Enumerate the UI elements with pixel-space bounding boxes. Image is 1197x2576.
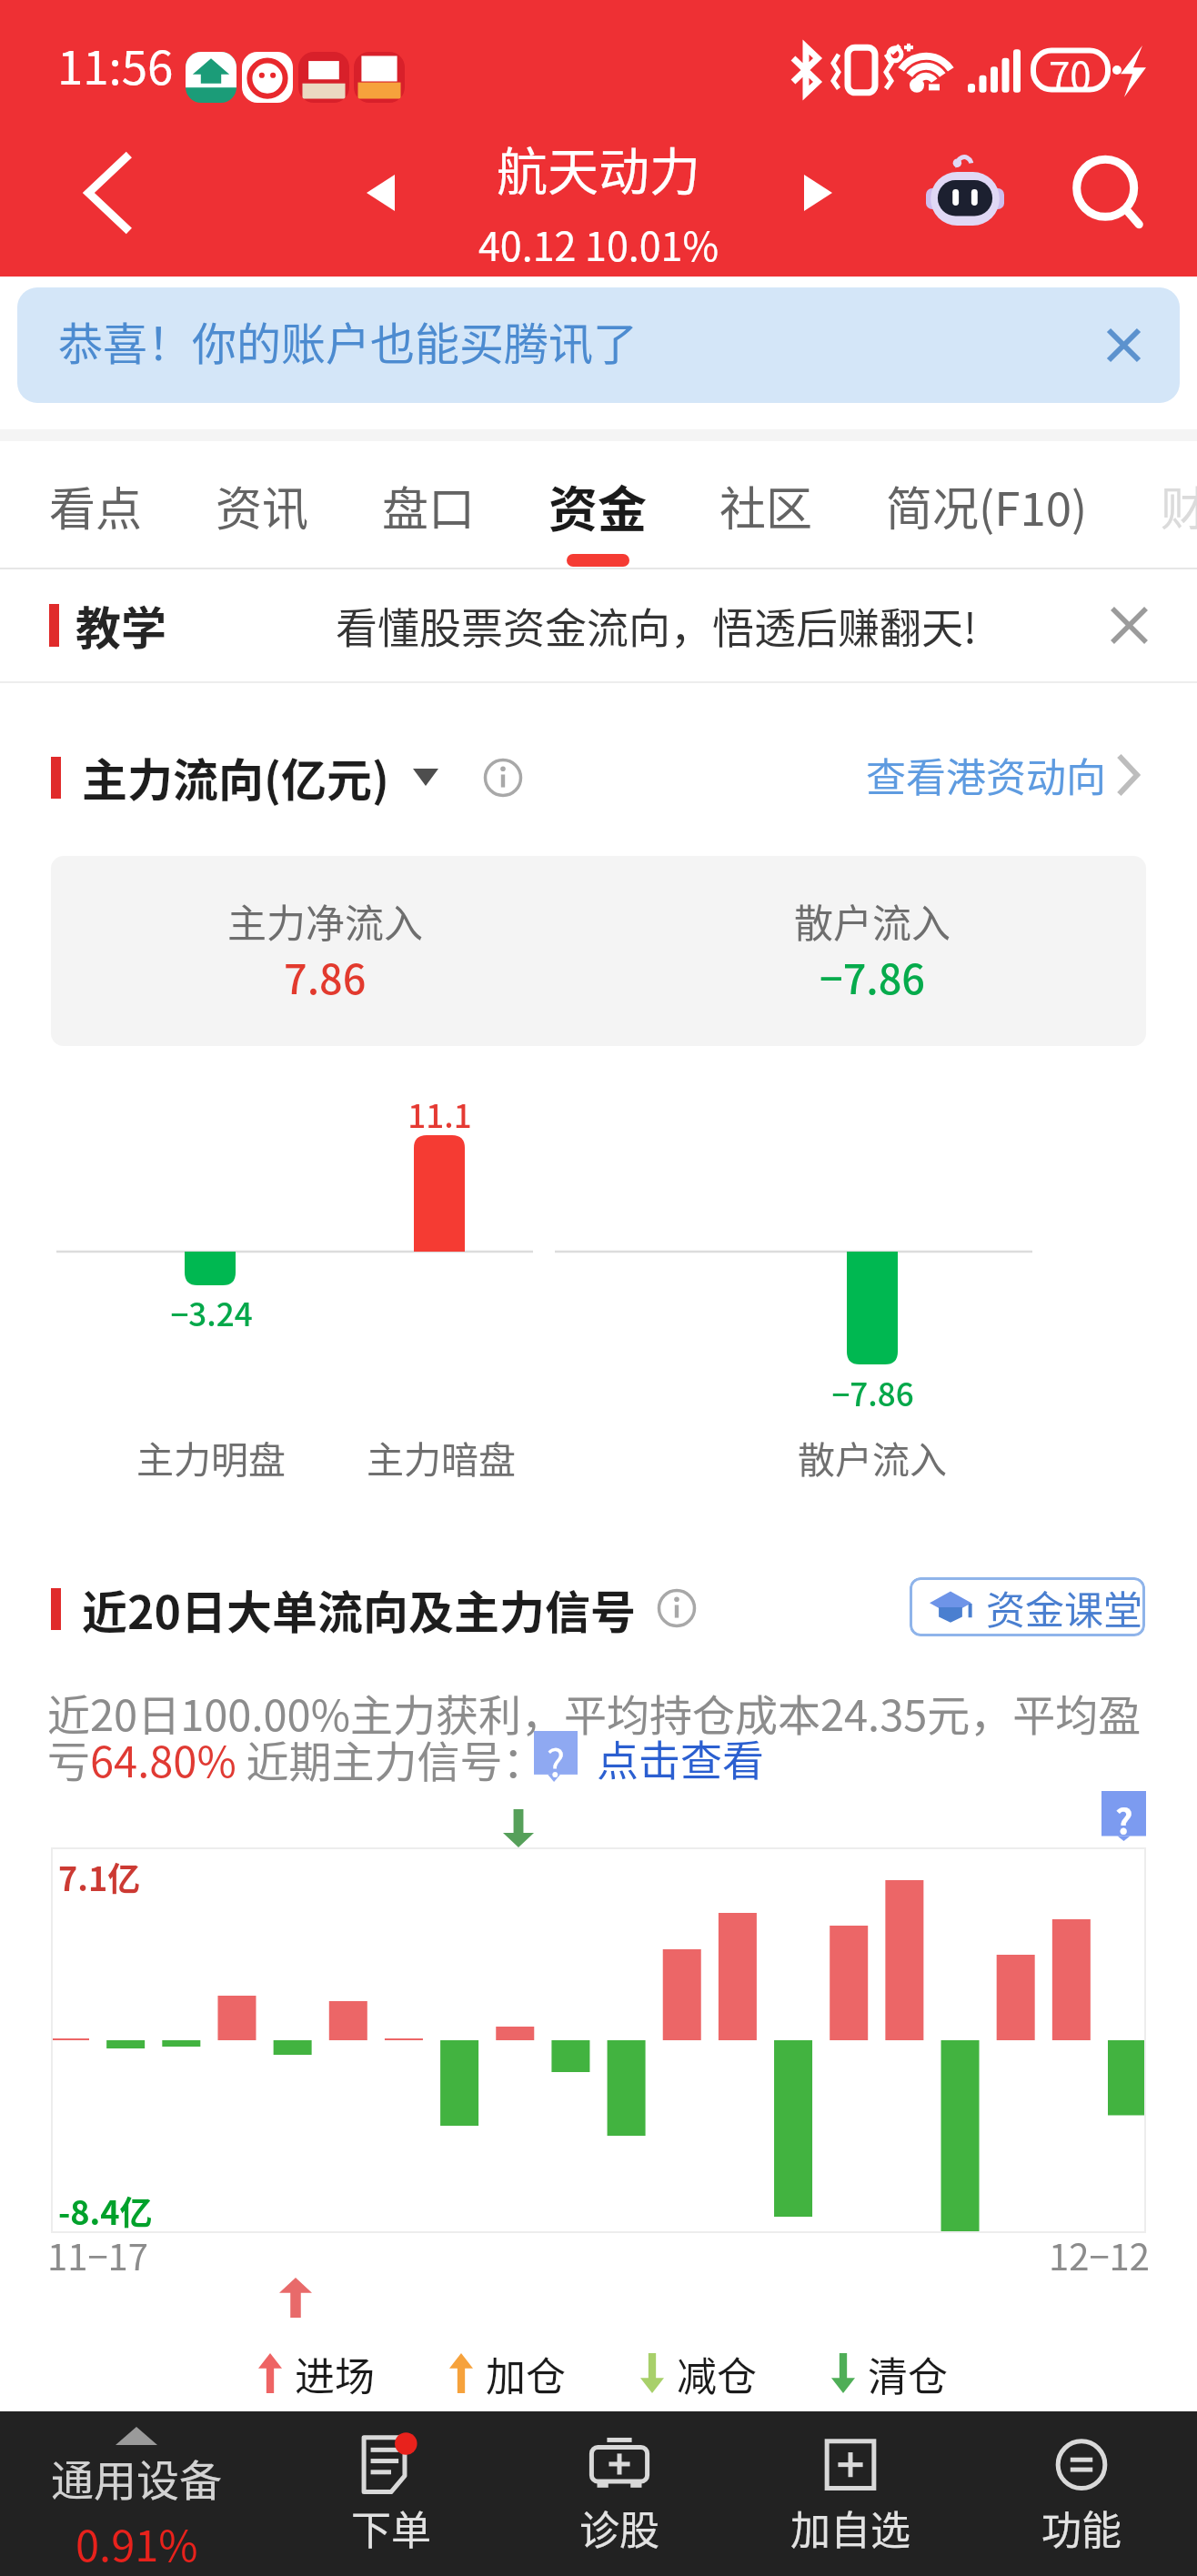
staticText: 资讯 [216,472,309,539]
button[interactable]: Info [653,1585,700,1632]
button[interactable]: 查看港资动向 [866,746,1139,804]
button[interactable]: AI assistant [901,109,1029,277]
staticText: 查看港资动向 [866,746,1106,804]
staticText: 11.1 [407,1091,472,1137]
staticText: 减仓 [677,2345,757,2401]
staticText: 航天动力 [497,131,700,205]
button[interactable]: 教学 [0,569,1197,683]
staticText: 12−12 [1049,2229,1150,2281]
staticText: -8.4亿 [58,2187,153,2234]
button[interactable]: Previous stock [326,109,435,277]
staticText: 功能 [1041,2499,1122,2557]
button[interactable]: 资金课堂 [910,1577,1145,1636]
staticText: 主力流向(亿元) [82,744,389,810]
button[interactable]: Close banner [1095,317,1152,373]
button[interactable]: 恭喜！你的账户也能买腾讯了 [17,287,1180,403]
button[interactable]: 下单 [276,2411,507,2576]
staticText: 7.86 [284,947,367,1006]
button[interactable]: 主力流向(亿元) [82,744,438,810]
staticText: 主力净流入 [227,892,423,949]
staticText: 0.91% [75,2511,198,2573]
staticText: −3.24 [170,1289,253,1335]
staticText: 加仓 [486,2345,566,2401]
button[interactable]: 资金 [512,441,683,569]
staticText: ? [1115,1795,1133,1845]
staticText: 看点 [49,472,143,539]
button[interactable]: 简况(F10) [850,441,1124,569]
staticText: 清仓 [868,2345,948,2401]
staticText: 近20日大单流向及主力信号 [82,1576,636,1642]
staticText: 恭喜！你的账户也能买腾讯了 [58,308,639,373]
staticText: 11−17 [47,2229,148,2281]
button[interactable]: 点击查看 [597,1727,764,1788]
button[interactable]: 功能 [966,2411,1197,2576]
staticText: ? [547,1732,565,1783]
staticText: 资金课堂 [986,1579,1142,1635]
staticText: 盘口 [382,472,476,539]
staticText: 散户流入 [794,892,951,949]
staticText: 看懂股票资金流向，悟透后赚翻天! [336,595,977,656]
staticText: 11:56 [57,31,174,98]
button[interactable]: 通用设备 [0,2411,273,2576]
button[interactable]: Signal help [534,1731,578,1782]
button[interactable]: Search [1044,109,1172,277]
button[interactable]: 加自选 [735,2411,966,2576]
staticText: 简况(F10) [886,472,1088,539]
staticText: 通用设备 [51,2446,222,2508]
button[interactable]: Back [47,109,166,277]
button[interactable]: Close tip [1101,598,1156,652]
staticText: 加自选 [790,2499,910,2557]
button[interactable]: 资讯 [179,441,346,569]
button[interactable]: Info [479,754,527,801]
staticText: 资金 [548,470,647,541]
staticText: 近20日100.00%主力获利，平均持仓成本24.35元，平均盈 [47,1681,1142,1743]
staticText: 7.1亿 [58,1853,141,1900]
staticText: 主力明盘 [136,1430,286,1484]
button[interactable]: Help [1101,1791,1146,1841]
staticText: 进场 [295,2345,375,2401]
staticText: 64.80% [90,1727,236,1789]
staticText: 诊股 [579,2499,659,2557]
button[interactable]: 社区 [683,441,850,569]
staticText: −7.86 [820,947,926,1006]
button[interactable]: 盘口 [346,441,512,569]
staticText: 社区 [719,472,813,539]
staticText: −7.86 [831,1369,914,1415]
button[interactable]: 诊股 [504,2411,735,2576]
staticText: 70 [1049,45,1091,101]
staticText: 下单 [351,2499,431,2557]
staticText: 近期主力信号： [236,1727,546,1789]
button[interactable]: 财 [1124,441,1197,569]
staticText: 40.12 10.01% [478,216,719,272]
button[interactable]: Next stock [763,109,872,277]
staticText: 散户流入 [798,1430,947,1484]
button[interactable]: 看点 [13,441,179,569]
staticText: 亏 [47,1727,90,1789]
staticText: 教学 [75,592,166,658]
staticText: 主力暗盘 [367,1430,516,1484]
